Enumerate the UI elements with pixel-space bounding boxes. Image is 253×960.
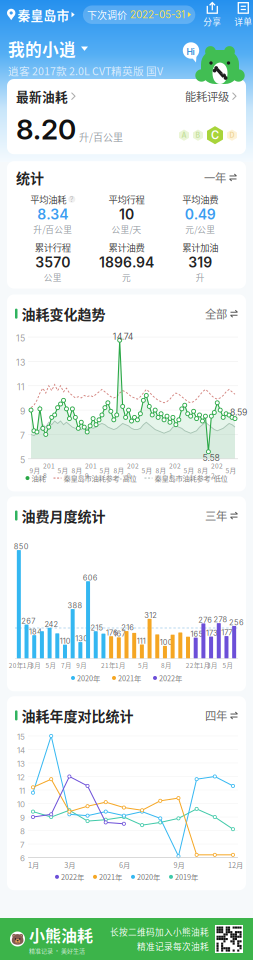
staticText: 8月 bbox=[71, 466, 82, 475]
staticText: 267 bbox=[21, 616, 35, 625]
staticText: 216 bbox=[121, 623, 134, 632]
staticText: 公里/天 bbox=[111, 223, 141, 235]
button[interactable]: 分享 bbox=[203, 2, 221, 28]
staticText: 平均行程 bbox=[108, 192, 144, 206]
staticText: 一年 bbox=[204, 169, 226, 186]
staticText: 7月 bbox=[61, 661, 71, 670]
staticText: 242 bbox=[44, 620, 58, 629]
staticText: 8.34 bbox=[37, 206, 68, 223]
staticText: 13 bbox=[17, 759, 25, 769]
staticText: 9月 bbox=[76, 661, 86, 670]
staticText: 15 bbox=[17, 732, 25, 742]
button[interactable]: 全部 bbox=[205, 305, 238, 322]
staticText: 110 bbox=[60, 637, 71, 646]
staticText: 2021年 bbox=[99, 872, 122, 882]
staticText: 累计油费 bbox=[108, 240, 144, 254]
staticText: 9 bbox=[20, 813, 25, 823]
staticText: 111 bbox=[137, 636, 146, 645]
staticText: 详单 bbox=[234, 15, 252, 28]
staticText: 7 bbox=[20, 840, 25, 850]
staticText: 2022年 bbox=[61, 872, 84, 882]
staticText: 100 bbox=[160, 638, 173, 647]
staticText: 逍客 2017款 2.0L CVT精英版 国V bbox=[8, 63, 163, 78]
staticText: 2020年 bbox=[137, 872, 160, 882]
staticText: 1月 bbox=[28, 860, 39, 870]
staticText: 9 bbox=[20, 406, 25, 417]
staticText: 9月 bbox=[29, 466, 40, 475]
staticText: 8月 bbox=[161, 661, 171, 670]
staticText: 184 bbox=[29, 627, 42, 636]
staticText: 3月 bbox=[64, 860, 75, 870]
staticText: 3月 bbox=[30, 661, 40, 670]
staticText: 5月 bbox=[183, 466, 194, 475]
staticText: 9月 bbox=[173, 860, 184, 870]
staticText: 2022 bbox=[211, 461, 223, 480]
staticText: 我的小逍 bbox=[8, 37, 76, 61]
button[interactable]: 四年 bbox=[205, 707, 238, 724]
staticText: 13 bbox=[16, 357, 25, 368]
staticText: 秦皇岛市油耗参考-低位 bbox=[154, 473, 227, 483]
staticText: 全部 bbox=[205, 305, 227, 322]
staticText: 累计行程 bbox=[35, 240, 71, 254]
staticText: 能耗评级 bbox=[185, 88, 229, 104]
staticText: 167 bbox=[114, 629, 126, 638]
staticText: 油耗年度对比统计 bbox=[21, 705, 133, 726]
staticText: 6 bbox=[20, 854, 25, 863]
staticText: 平均油耗 bbox=[30, 192, 66, 206]
staticText: 四年 bbox=[205, 707, 227, 724]
staticText: 5月 bbox=[99, 466, 110, 475]
staticText: 173 bbox=[206, 629, 218, 638]
staticText: 606 bbox=[83, 573, 98, 582]
staticText: 升/百公里 bbox=[33, 223, 72, 235]
staticText: 176 bbox=[106, 628, 118, 637]
staticText: 11 bbox=[19, 786, 25, 796]
staticText: A bbox=[181, 131, 186, 139]
staticText: 油耗变化趋势 bbox=[21, 303, 105, 324]
staticText: 11 bbox=[17, 382, 25, 392]
staticText: 公里 bbox=[44, 271, 62, 283]
staticText: 2019 bbox=[85, 461, 97, 480]
button[interactable]: 详单 bbox=[234, 2, 252, 28]
staticText: 精准记录 · 美好生活 bbox=[29, 946, 85, 955]
staticText: 精准记录每次油耗 bbox=[137, 940, 209, 952]
button[interactable]: 一年 bbox=[204, 169, 237, 186]
staticText: 14.74 bbox=[113, 331, 134, 342]
staticText: 平均油费 bbox=[182, 192, 218, 206]
staticText: 130 bbox=[75, 634, 88, 643]
staticText: 小熊油耗 bbox=[29, 923, 93, 946]
button[interactable]: 能耗评级 bbox=[185, 88, 237, 104]
staticText: 统计 bbox=[16, 167, 44, 187]
staticText: 元 bbox=[122, 271, 131, 283]
staticText: 12 bbox=[17, 772, 25, 782]
staticText: 2022年 bbox=[159, 673, 182, 683]
staticText: 1896.94 bbox=[99, 254, 154, 271]
staticText: 5月 bbox=[222, 661, 232, 670]
staticText: 三年 bbox=[205, 507, 227, 524]
staticText: 2019年 bbox=[175, 872, 198, 882]
staticText: 0.49 bbox=[185, 206, 216, 223]
staticText: 3570 bbox=[35, 254, 70, 271]
staticText: 14 bbox=[17, 745, 25, 755]
button[interactable]: 我的小逍 bbox=[8, 37, 88, 61]
staticText: 22年1月 bbox=[186, 661, 210, 670]
staticText: 最新油耗 bbox=[16, 87, 68, 105]
staticText: 5月 bbox=[138, 661, 148, 670]
staticText: 276 bbox=[198, 615, 212, 624]
staticText: 215 bbox=[90, 623, 103, 632]
staticText: 10 bbox=[17, 799, 25, 809]
staticText: 278 bbox=[214, 615, 228, 624]
staticText: 5月 bbox=[141, 466, 152, 475]
staticText: 8.59 bbox=[230, 407, 247, 418]
button[interactable]: 最新油耗 bbox=[16, 87, 76, 105]
staticText: 10 bbox=[119, 206, 134, 223]
staticText: Hi bbox=[186, 47, 194, 57]
staticText: B bbox=[195, 131, 200, 139]
button[interactable]: 下次调价 bbox=[83, 5, 195, 24]
button[interactable]: 三年 bbox=[205, 507, 238, 524]
staticText: 油耗 bbox=[31, 473, 45, 483]
button[interactable]: 秦皇岛市 bbox=[7, 5, 75, 24]
staticText: 319 bbox=[188, 254, 212, 271]
staticText: 5月 bbox=[57, 466, 68, 475]
staticText: 20年1月 bbox=[9, 661, 33, 670]
staticText: 2020年 bbox=[77, 673, 100, 683]
